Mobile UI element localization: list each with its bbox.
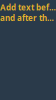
staticText: Add text before <box>0 2 56 13</box>
staticText: and after the name <box>0 13 56 23</box>
